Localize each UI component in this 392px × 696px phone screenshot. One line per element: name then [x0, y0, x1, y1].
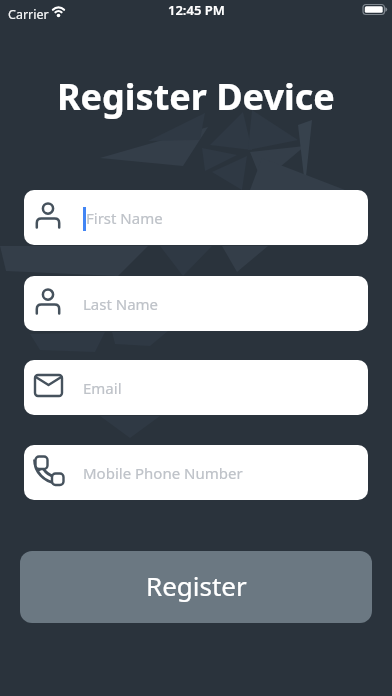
staticText: Email: [83, 378, 122, 398]
button[interactable]: First Name: [24, 190, 368, 245]
staticText: Last Name: [83, 294, 159, 314]
button[interactable]: Register: [20, 551, 372, 623]
staticText: Mobile Phone Number: [83, 463, 243, 483]
staticText: Register Device: [57, 72, 335, 121]
staticText: 12:45 PM: [168, 1, 225, 19]
staticText: Carrier: [8, 6, 49, 23]
staticText: Register: [146, 568, 247, 603]
button[interactable]: Last Name: [24, 276, 368, 331]
staticText: First Name: [86, 208, 163, 228]
button[interactable]: Mobile Phone Number: [24, 445, 368, 500]
button[interactable]: Email: [24, 360, 368, 415]
